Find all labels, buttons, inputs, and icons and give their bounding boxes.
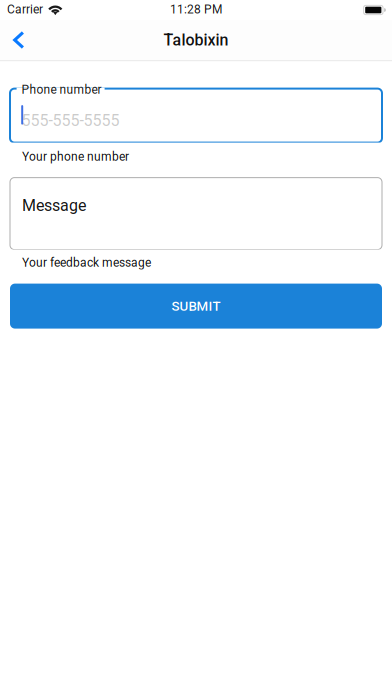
staticText: Message xyxy=(22,196,86,215)
staticText: Phone number xyxy=(22,83,102,97)
staticText: 555-555-5555 xyxy=(22,111,120,130)
staticText: 11:28 PM xyxy=(170,2,222,17)
staticText: Talobixin xyxy=(163,31,228,49)
button[interactable]: SUBMIT xyxy=(10,284,382,329)
staticText: Your feedback message xyxy=(22,256,151,270)
button[interactable]: Back xyxy=(0,21,39,59)
staticText: SUBMIT xyxy=(171,298,220,314)
staticText: Carrier xyxy=(7,2,43,17)
staticText: Your phone number xyxy=(22,150,129,164)
